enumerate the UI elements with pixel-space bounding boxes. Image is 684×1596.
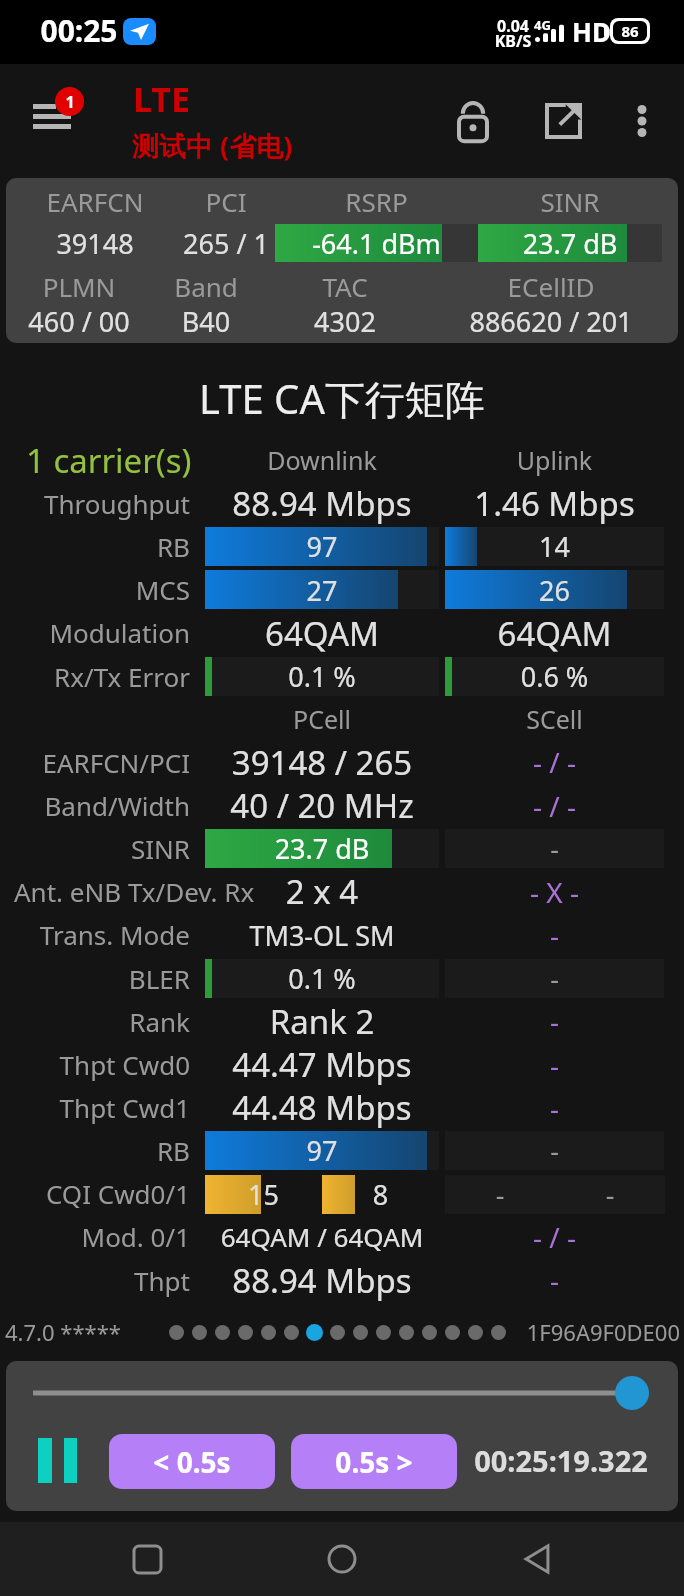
button[interactable]: Menu — [18, 78, 94, 138]
staticText: 1 carrier(s) — [26, 438, 226, 483]
staticText: - — [555, 1176, 665, 1213]
staticText: 265 / 1 — [170, 225, 282, 262]
staticText: Thpt Cwd0 — [0, 1047, 190, 1082]
staticText: 2 x 4 — [205, 869, 439, 914]
staticText: Rx/Tx Error — [0, 659, 190, 694]
staticText: BLER — [0, 961, 190, 996]
staticText: 39148 — [20, 225, 170, 262]
staticText: 44.48 Mbps — [205, 1085, 439, 1130]
staticText: 4G — [534, 16, 551, 34]
staticText: TM3-OL SM — [205, 917, 439, 954]
staticText: < 0.5s — [153, 1443, 231, 1481]
staticText: Mod. 0/1 — [0, 1219, 190, 1254]
staticText: Trans. Mode — [0, 917, 190, 952]
staticText: Downlink — [205, 443, 439, 477]
staticText: Thpt — [0, 1263, 190, 1298]
button[interactable]: Recents — [99, 1522, 195, 1596]
staticText: CQI Cwd0/1 — [0, 1176, 190, 1211]
staticText: 8 — [322, 1176, 439, 1213]
staticText: SINR — [0, 831, 190, 866]
staticText: Throughput — [0, 486, 190, 521]
button[interactable]: < 0.5s — [109, 1434, 275, 1489]
staticText: - — [445, 830, 664, 867]
button[interactable]: Home — [294, 1522, 390, 1596]
staticText: B40 — [146, 303, 266, 340]
staticText: 0.1 % — [205, 960, 439, 997]
staticText: RB — [0, 529, 190, 564]
staticText: 测试中 (省电) — [132, 127, 293, 164]
staticText: LTE — [133, 76, 190, 122]
staticText: ECellID — [456, 269, 646, 304]
staticText: SINR — [478, 184, 662, 219]
staticText: RSRP — [275, 184, 478, 219]
staticText: 40 / 20 MHz — [205, 783, 439, 828]
staticText: Uplink — [445, 443, 664, 477]
staticText: 1 — [65, 91, 75, 113]
staticText: Rank — [0, 1004, 190, 1039]
button[interactable]: Timeline position — [615, 1376, 649, 1410]
staticText: PCell — [205, 702, 439, 736]
staticText: 00:25 — [40, 10, 118, 51]
staticText: KB/S — [494, 30, 532, 52]
staticText: Thpt Cwd1 — [0, 1090, 190, 1125]
staticText: 23.7 dB — [478, 225, 662, 262]
button[interactable]: Back — [489, 1522, 585, 1596]
staticText: 4302 — [262, 303, 428, 340]
button[interactable]: Lock — [433, 76, 513, 166]
staticText: EARFCN/PCI — [0, 745, 190, 780]
staticText: 0.04 — [494, 15, 532, 37]
staticText: 460 / 00 — [6, 303, 154, 340]
staticText: 0.5s > — [335, 1443, 413, 1481]
staticText: 39148 / 265 — [205, 740, 439, 785]
staticText: - / - — [445, 743, 664, 781]
staticText: TAC — [262, 269, 428, 304]
staticText: 97 — [205, 1132, 439, 1169]
staticText: 26 — [445, 572, 664, 609]
staticText: 64QAM — [445, 611, 664, 656]
staticText: MCS — [0, 572, 190, 607]
button[interactable]: More options — [606, 76, 678, 166]
staticText: 1.46 Mbps — [445, 481, 664, 526]
staticText: 88.94 Mbps — [205, 1258, 439, 1303]
staticText: - — [445, 1089, 664, 1127]
staticText: - — [445, 1176, 555, 1213]
staticText: Rank 2 — [205, 999, 439, 1044]
staticText: 15 — [205, 1176, 322, 1213]
staticText: 0.1 % — [205, 658, 439, 695]
staticText: - — [445, 1046, 664, 1084]
staticText: 97 — [205, 528, 439, 565]
staticText: - — [445, 1132, 664, 1169]
staticText: - — [445, 960, 664, 997]
staticText: LTE CA下行矩阵 — [0, 371, 684, 426]
staticText: 14 — [445, 528, 664, 565]
button[interactable]: Pause — [32, 1431, 88, 1489]
staticText: Modulation — [0, 615, 190, 650]
staticText: - — [445, 916, 664, 954]
staticText: 886620 / 201 — [456, 303, 646, 340]
staticText: PCI — [170, 184, 282, 219]
staticText: - / - — [445, 1218, 664, 1256]
button[interactable]: Share — [523, 76, 603, 166]
staticText: Band — [146, 269, 266, 304]
staticText: - — [445, 1261, 664, 1299]
staticText: 44.47 Mbps — [205, 1042, 439, 1087]
staticText: 1F96A9F0DE00 — [526, 1317, 680, 1347]
staticText: 0.6 % — [445, 658, 664, 695]
staticText: RB — [0, 1133, 190, 1168]
staticText: 64QAM / 64QAM — [205, 1219, 439, 1254]
staticText: 00:25:19.322 — [474, 1441, 648, 1480]
staticText: 64QAM — [205, 611, 439, 656]
staticText: Band/Width — [0, 788, 190, 823]
staticText: SCell — [445, 702, 664, 736]
staticText: - X - — [445, 873, 664, 911]
staticText: 4.7.0 ***** — [5, 1317, 121, 1347]
staticText: HD — [572, 14, 611, 49]
staticText: Ant. eNB Tx/Dev. Rx — [14, 874, 258, 909]
staticText: 23.7 dB — [205, 830, 439, 867]
staticText: -64.1 dBm — [275, 225, 478, 262]
staticText: 86 — [621, 21, 639, 41]
staticText: EARFCN — [20, 184, 170, 219]
button[interactable]: 0.5s > — [291, 1434, 457, 1489]
staticText: 27 — [205, 572, 439, 609]
staticText: PLMN — [6, 269, 154, 304]
